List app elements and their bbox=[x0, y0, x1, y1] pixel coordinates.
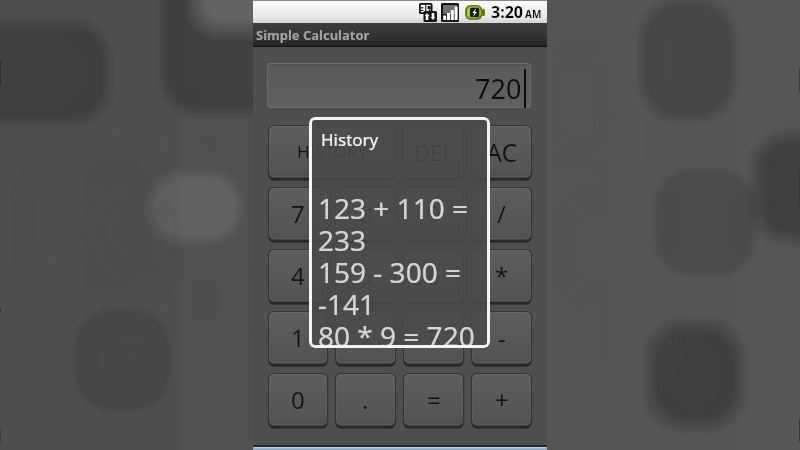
staticText: 233 bbox=[318, 221, 367, 253]
staticText: 3 bbox=[427, 321, 441, 354]
staticText: 8 bbox=[359, 197, 373, 230]
staticText: AM bbox=[525, 7, 542, 21]
button[interactable]: = bbox=[403, 373, 464, 428]
staticText: 9 bbox=[427, 197, 441, 230]
staticText: Simple Calculator bbox=[256, 26, 370, 44]
staticText: 1 bbox=[291, 321, 305, 354]
button[interactable]: 3 bbox=[403, 311, 464, 366]
staticText: 123 + 110 = bbox=[318, 189, 468, 221]
button[interactable]: 6 bbox=[403, 249, 464, 304]
button[interactable]: HISTORY bbox=[268, 125, 396, 180]
other: 3G mobile data bbox=[419, 3, 437, 22]
staticText: -141 bbox=[318, 285, 376, 317]
button[interactable]: * bbox=[471, 249, 532, 304]
staticText: AC bbox=[486, 135, 518, 169]
button[interactable]: 2 bbox=[335, 311, 396, 366]
button[interactable]: - bbox=[471, 311, 532, 366]
staticText: 3:20 bbox=[491, 1, 523, 23]
button[interactable]: / bbox=[471, 187, 532, 242]
staticText: 2 bbox=[359, 321, 373, 354]
button[interactable]: 233 bbox=[309, 223, 490, 255]
staticText: History bbox=[321, 128, 379, 151]
button[interactable]: + bbox=[471, 373, 532, 428]
button[interactable]: 80 * 9 = 720 bbox=[309, 319, 490, 348]
staticText: . bbox=[362, 383, 369, 416]
button[interactable]: 0 bbox=[268, 373, 328, 428]
other: Signal strength bbox=[441, 3, 459, 22]
staticText: 5 bbox=[359, 259, 373, 292]
staticText: = bbox=[427, 383, 441, 416]
button[interactable]: 720 bbox=[267, 63, 531, 108]
other: Battery charging bbox=[465, 5, 485, 20]
button[interactable]: 123 + 110 = bbox=[309, 191, 490, 223]
staticText: 159 - 300 = bbox=[318, 253, 461, 285]
staticText: HISTORY bbox=[297, 140, 368, 163]
button[interactable]: -141 bbox=[309, 287, 490, 319]
staticText: / bbox=[497, 197, 506, 230]
button[interactable]: 5 bbox=[335, 249, 396, 304]
button[interactable]: 9 bbox=[403, 187, 464, 242]
button[interactable]: 1 bbox=[268, 311, 328, 366]
button[interactable]: . bbox=[335, 373, 396, 428]
staticText: - bbox=[498, 321, 506, 354]
staticText: * bbox=[495, 259, 509, 292]
button[interactable]: AC bbox=[471, 125, 532, 180]
staticText: + bbox=[495, 383, 509, 416]
staticText: 80 * 9 = 720 bbox=[318, 317, 475, 348]
staticText: 6 bbox=[427, 259, 441, 292]
button[interactable]: 4 bbox=[268, 249, 328, 304]
staticText: 0 bbox=[291, 383, 305, 416]
button[interactable]: 8 bbox=[335, 187, 396, 242]
button[interactable]: 159 - 300 = bbox=[309, 255, 490, 287]
button[interactable]: History bbox=[309, 117, 490, 348]
staticText: 720 bbox=[475, 70, 522, 107]
button[interactable]: 7 bbox=[268, 187, 328, 242]
staticText: 4 bbox=[291, 259, 305, 292]
staticText: 7 bbox=[291, 197, 305, 230]
